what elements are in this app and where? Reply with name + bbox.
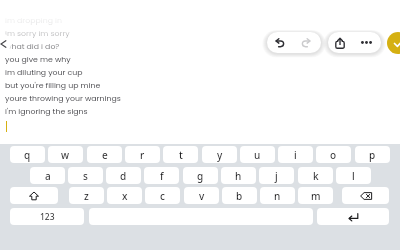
button[interactable]: Enter <box>317 208 389 225</box>
button[interactable]: k <box>298 167 333 184</box>
button[interactable]: s <box>68 167 103 184</box>
staticText: e <box>102 148 108 162</box>
staticText: what did i do? <box>5 41 60 52</box>
staticText: y <box>217 148 223 162</box>
staticText: u <box>254 148 261 162</box>
staticText: i <box>294 148 297 162</box>
staticText: h <box>235 169 242 183</box>
button[interactable]: i <box>278 146 313 163</box>
button[interactable]: e <box>87 146 122 163</box>
staticText: n <box>274 189 281 203</box>
staticText: m <box>311 189 321 203</box>
button[interactable]: Share <box>328 32 352 53</box>
staticText: l <box>352 169 355 183</box>
staticText: x <box>122 189 128 203</box>
button[interactable]: r <box>125 146 160 163</box>
button[interactable]: x <box>107 187 142 204</box>
button[interactable]: y <box>202 146 237 163</box>
button[interactable]: Shift <box>10 187 58 204</box>
staticText: a <box>45 169 51 183</box>
staticText: p <box>369 148 376 162</box>
staticText: z <box>84 189 89 203</box>
button[interactable]: 123 <box>10 208 84 225</box>
staticText: 123 <box>40 211 55 223</box>
staticText: q <box>24 148 31 162</box>
button[interactable]: Undo <box>267 32 292 53</box>
staticText: t <box>179 148 183 162</box>
button[interactable]: p <box>355 146 390 163</box>
button[interactable]: Done <box>387 32 400 54</box>
button[interactable]: d <box>106 167 141 184</box>
button[interactable]: l <box>336 167 371 184</box>
staticText: o <box>330 148 337 162</box>
staticText: i'm ignoring the signs <box>5 106 88 117</box>
staticText: j <box>275 169 278 183</box>
button[interactable]: w <box>48 146 83 163</box>
button[interactable]: More options <box>352 32 381 53</box>
staticText: v <box>199 189 205 203</box>
staticText: g <box>197 169 204 183</box>
staticText: b <box>236 189 243 203</box>
button[interactable]: f <box>144 167 179 184</box>
staticText: k <box>313 169 319 183</box>
staticText: s <box>83 169 88 183</box>
staticText: w <box>61 148 70 162</box>
button[interactable]: v <box>184 187 219 204</box>
button[interactable]: o <box>316 146 351 163</box>
button[interactable]: Backspace <box>342 187 389 204</box>
staticText: but you're filling up mine <box>5 80 101 91</box>
staticText: c <box>160 189 165 203</box>
staticText: im diluting your cup <box>5 67 83 78</box>
staticText: f <box>160 169 164 183</box>
button[interactable]: z <box>69 187 104 204</box>
button[interactable]: a <box>30 167 65 184</box>
button[interactable]: j <box>259 167 294 184</box>
staticText: you give me why <box>5 54 71 65</box>
button[interactable]: n <box>260 187 295 204</box>
button[interactable]: c <box>145 187 180 204</box>
button[interactable]: Redo <box>292 32 321 53</box>
button[interactable]: t <box>163 146 198 163</box>
staticText: d <box>120 169 127 183</box>
button[interactable]: m <box>298 187 333 204</box>
button[interactable]: q <box>10 146 45 163</box>
button[interactable]: g <box>183 167 218 184</box>
staticText: im sorry im sorry <box>5 28 70 39</box>
button[interactable]: b <box>222 187 257 204</box>
staticText: im dropping in <box>5 15 62 26</box>
button[interactable]: u <box>240 146 275 163</box>
button[interactable]: Back <box>0 33 11 55</box>
staticText: r <box>140 148 145 162</box>
staticText: youre throwing your warnings <box>5 93 121 104</box>
button[interactable]: h <box>221 167 256 184</box>
